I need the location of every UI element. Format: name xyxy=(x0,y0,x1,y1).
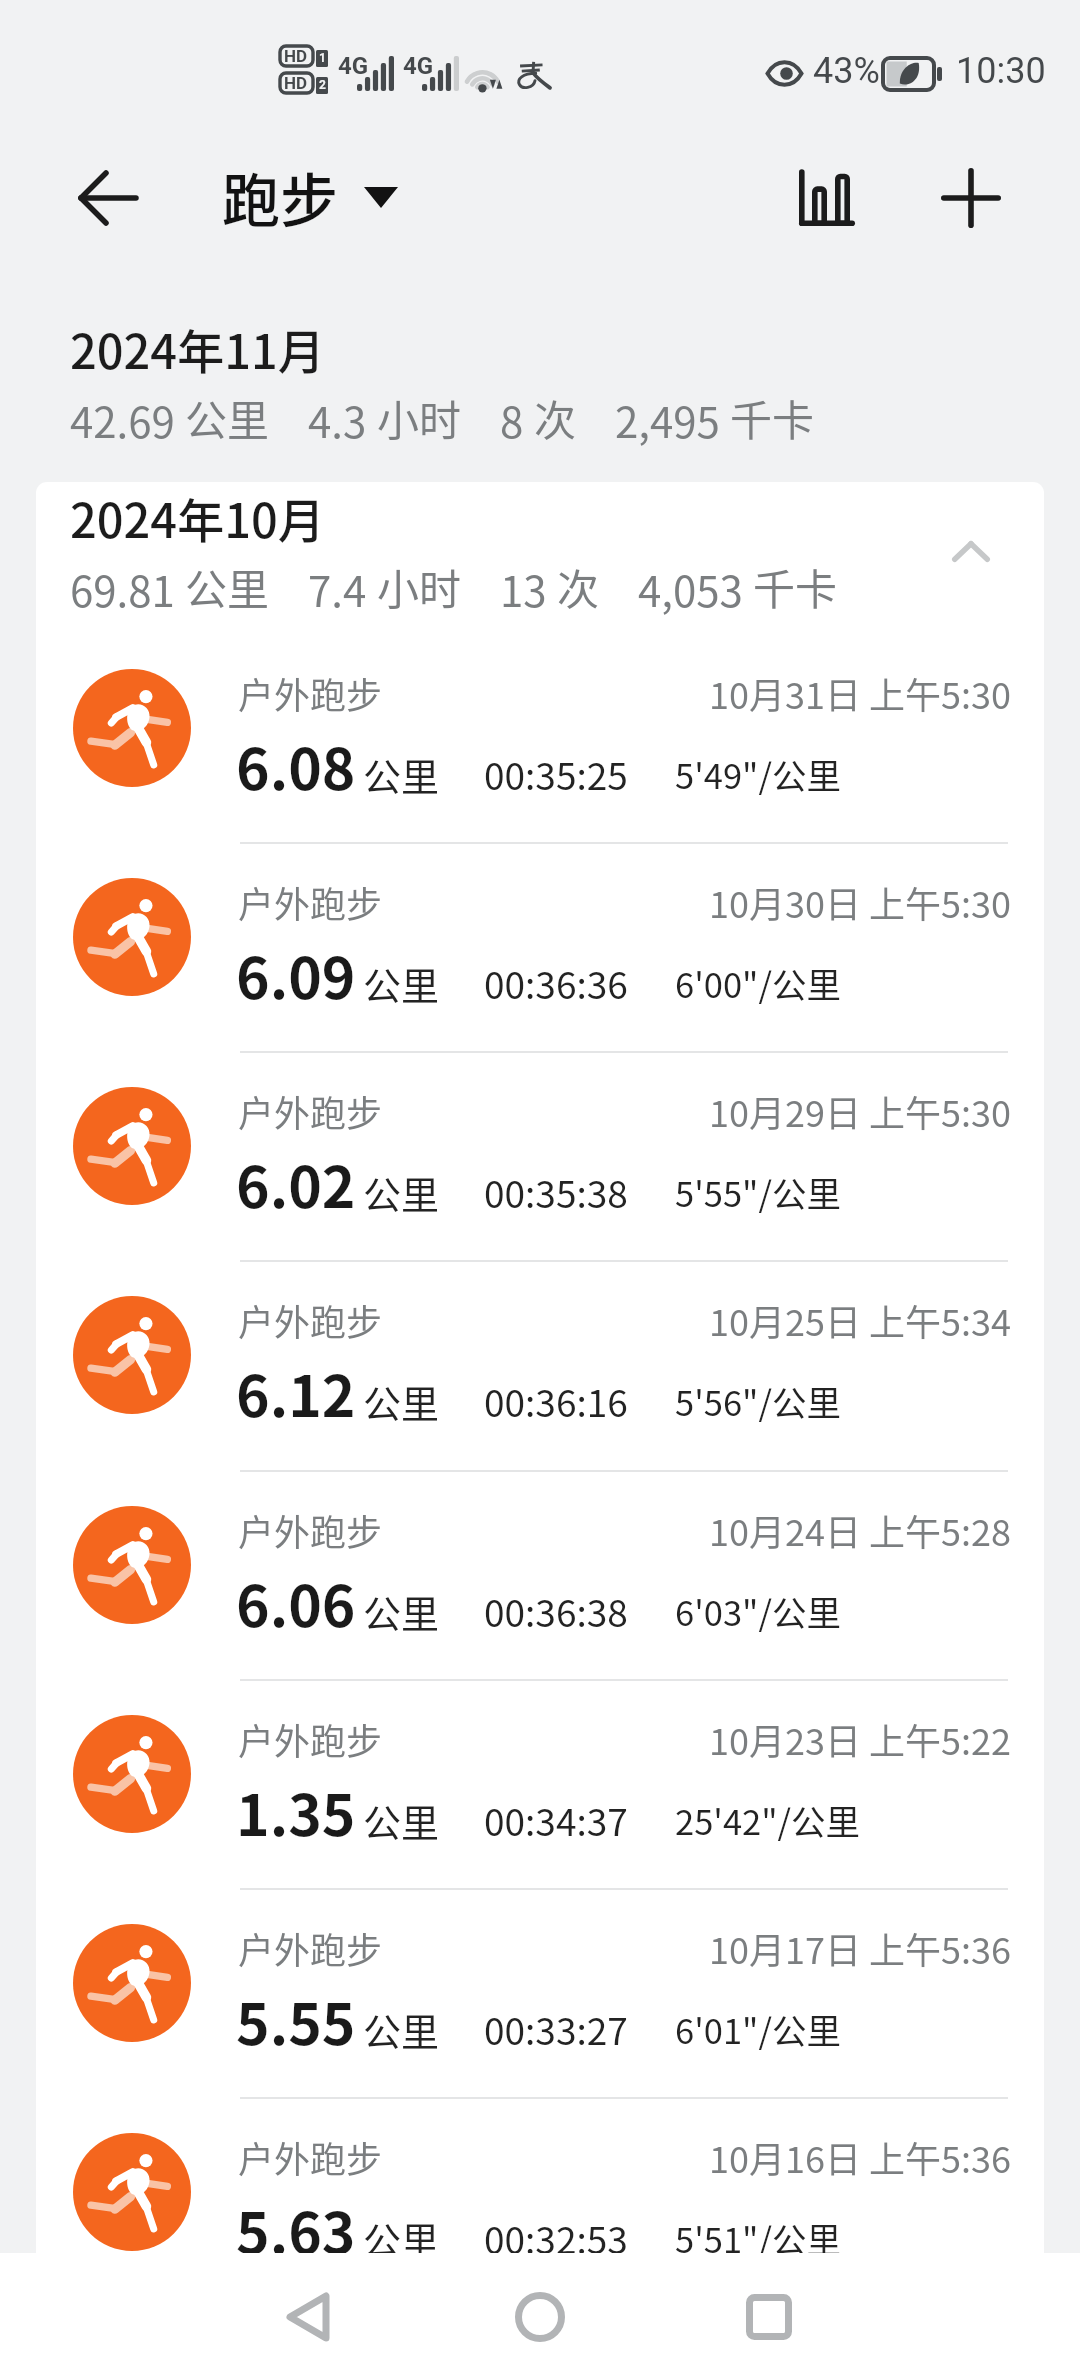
staticText: 户外跑步 xyxy=(238,1085,383,1137)
staticText: 6'03"/公里 xyxy=(675,1586,841,1636)
button[interactable]: 2024年10月 xyxy=(36,482,1044,642)
staticText: HD xyxy=(284,73,308,93)
staticText: 25'42"/公里 xyxy=(675,1795,861,1845)
staticText: 10月23日 上午5:22 xyxy=(508,1713,1011,1765)
staticText: 公里 xyxy=(363,1374,440,1429)
staticText: 公里 xyxy=(363,1165,440,1220)
staticText: 户外跑步 xyxy=(238,1713,383,1765)
staticText: 户外跑步 xyxy=(238,2131,383,2183)
staticText: 公里 xyxy=(363,747,440,802)
staticText: 00:35:38 xyxy=(484,1165,628,1219)
staticText: 10月17日 上午5:36 xyxy=(508,1922,1011,1974)
button[interactable]: 户外跑步 xyxy=(36,2108,1044,2317)
staticText: 5.55 xyxy=(236,1979,356,2062)
button[interactable]: Back xyxy=(260,2269,356,2365)
staticText: 户外跑步 xyxy=(238,1922,383,1974)
button[interactable]: Add xyxy=(916,143,1026,253)
staticText: 10月31日 上午5:30 xyxy=(508,667,1011,719)
staticText: 43% xyxy=(813,50,880,92)
staticText: 次 xyxy=(534,387,577,448)
staticText: 6'01"/公里 xyxy=(675,2004,841,2054)
staticText: 千卡 xyxy=(753,556,838,617)
staticText: 千卡 xyxy=(730,387,815,448)
staticText: 13 xyxy=(500,558,547,619)
staticText: 小时 xyxy=(377,556,462,617)
staticText: 00:36:38 xyxy=(484,1584,628,1638)
staticText: 4,053 xyxy=(638,558,743,619)
staticText: 户外跑步 xyxy=(238,1504,383,1556)
staticText: 公里 xyxy=(185,387,270,448)
staticText: 42.69 xyxy=(70,389,175,450)
button[interactable]: 户外跑步 xyxy=(36,644,1044,853)
staticText: 10月16日 上午5:36 xyxy=(508,2131,1011,2183)
staticText: 6.02 xyxy=(236,1142,356,1225)
button[interactable]: 户外跑步 xyxy=(36,853,1044,1062)
staticText: 5'49"/公里 xyxy=(675,749,841,799)
staticText: 公里 xyxy=(185,556,270,617)
staticText: 8 xyxy=(500,389,524,450)
staticText: 10月29日 上午5:30 xyxy=(508,1085,1011,1137)
staticText: 2,495 xyxy=(615,389,720,450)
staticText: 6'00"/公里 xyxy=(675,958,841,1008)
staticText: 5'51"/公里 xyxy=(675,2213,841,2263)
staticText: 7.4 xyxy=(308,558,367,619)
button[interactable]: Home xyxy=(492,2269,588,2365)
staticText: 1 xyxy=(319,51,326,65)
staticText: 户外跑步 xyxy=(238,1294,383,1346)
staticText: 5'55"/公里 xyxy=(675,1167,841,1217)
staticText: 户外跑步 xyxy=(238,667,383,719)
staticText: 10:30 xyxy=(956,50,1046,92)
staticText: 4.3 xyxy=(308,389,367,450)
staticText: HD xyxy=(284,46,308,66)
staticText: 2024年10月 xyxy=(70,483,325,551)
staticText: 小时 xyxy=(377,387,462,448)
staticText: 公里 xyxy=(363,2002,440,2057)
staticText: 10月24日 上午5:28 xyxy=(508,1504,1011,1556)
staticText: 00:36:16 xyxy=(484,1374,628,1428)
button[interactable]: Back xyxy=(55,146,159,250)
staticText: 1.35 xyxy=(236,1770,356,1853)
staticText: 6.09 xyxy=(236,933,356,1016)
button[interactable]: 跑步 xyxy=(214,155,404,245)
staticText: 69.81 xyxy=(70,558,175,619)
staticText: 户外跑步 xyxy=(238,876,383,928)
button[interactable]: Statistics xyxy=(772,143,882,253)
button[interactable]: 户外跑步 xyxy=(36,1481,1044,1690)
staticText: 公里 xyxy=(363,2211,440,2266)
button[interactable]: 户外跑步 xyxy=(36,1062,1044,1271)
button[interactable]: 户外跑步 xyxy=(36,1690,1044,1899)
staticText: 4G xyxy=(403,52,434,80)
button[interactable]: Recents xyxy=(721,2269,817,2365)
button[interactable]: 户外跑步 xyxy=(36,1271,1044,1480)
staticText: 5'56"/公里 xyxy=(675,1376,841,1426)
staticText: 00:32:53 xyxy=(484,2211,628,2265)
staticText: 00:34:37 xyxy=(484,1793,628,1847)
staticText: 5.63 xyxy=(236,2188,356,2271)
staticText: 4G xyxy=(338,52,369,80)
staticText: 00:35:25 xyxy=(484,747,628,801)
staticText: 2024年11月 xyxy=(70,314,325,382)
staticText: 公里 xyxy=(363,1584,440,1639)
staticText: 2 xyxy=(319,78,326,92)
button[interactable]: 户外跑步 xyxy=(36,1899,1044,2108)
staticText: 10月25日 上午5:34 xyxy=(508,1294,1011,1346)
staticText: 公里 xyxy=(363,956,440,1011)
staticText: 6.12 xyxy=(236,1351,356,1434)
button[interactable]: Collapse xyxy=(926,506,1016,596)
staticText: 次 xyxy=(557,556,600,617)
staticText: 6.06 xyxy=(236,1561,356,1644)
staticText: 跑步 xyxy=(222,155,339,239)
staticText: 00:33:27 xyxy=(484,2002,628,2056)
staticText: 6.08 xyxy=(236,724,356,807)
staticText: 10月30日 上午5:30 xyxy=(508,876,1011,928)
button[interactable]: 2024年11月 xyxy=(0,300,1080,470)
staticText: 00:36:36 xyxy=(484,956,628,1010)
staticText: 公里 xyxy=(363,1793,440,1848)
